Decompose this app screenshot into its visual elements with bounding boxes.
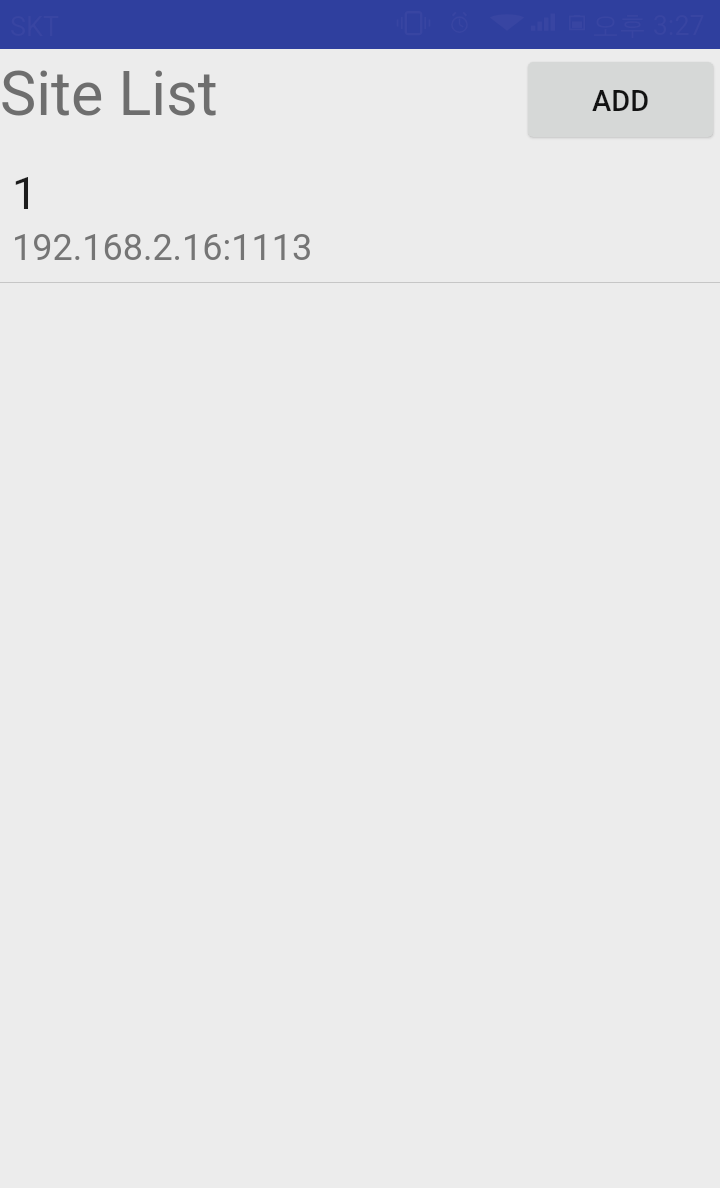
other: Vibrate mode: [396, 8, 431, 38]
staticText: 192.168.2.16:1113: [12, 227, 313, 269]
staticText: Site List: [0, 58, 218, 129]
staticText: SKT: [10, 11, 60, 43]
other: Mobile signal: [530, 10, 557, 36]
other: Battery: [568, 12, 586, 33]
staticText: ADD: [592, 84, 650, 118]
other: Wi-Fi connected: [489, 10, 525, 36]
staticText: 1: [12, 167, 38, 220]
button[interactable]: ADD: [528, 62, 713, 137]
button[interactable]: 1: [0, 147, 720, 283]
